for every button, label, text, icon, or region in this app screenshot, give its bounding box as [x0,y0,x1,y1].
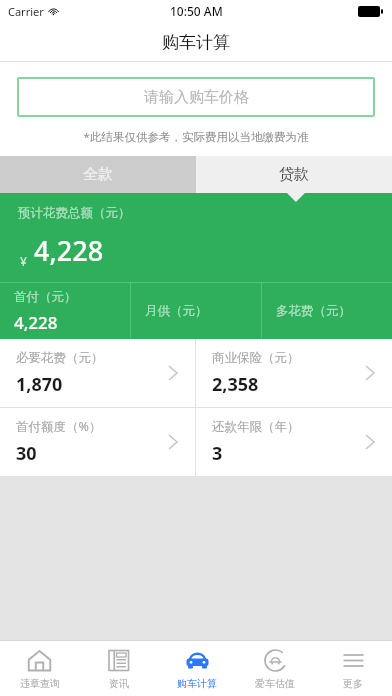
staticText: 3 [212,441,223,466]
staticText: 首付额度（%） [16,418,102,435]
staticText: 还款年限（年） [212,419,300,435]
staticText: ¥ [20,253,27,269]
staticText: 全款 [83,165,113,184]
staticText: 购车计算 [162,32,230,53]
button[interactable]: 全款 [0,156,196,193]
staticText: 预计花费总额（元） [18,205,131,221]
staticText: 必要花费（元） [16,350,104,366]
button[interactable]: 更多 [314,641,392,696]
button[interactable]: 还款年限（年） [196,408,392,476]
staticText: 贷款 [279,165,309,184]
staticText: Carrier [8,4,44,19]
staticText: 4,228 [34,232,104,269]
button[interactable]: 必要花费（元） [0,339,195,407]
button[interactable]: 爱车估值 [236,641,314,696]
staticText: 违章查询 [20,677,60,690]
button[interactable]: 商业保险（元） [196,339,392,407]
button[interactable]: 购车计算 [158,641,236,696]
staticText: 2,358 [212,372,259,397]
staticText: 资讯 [109,677,129,690]
staticText: 4,228 [14,311,58,334]
staticText: 爱车估值 [255,677,295,690]
staticText: 首付（元） [14,289,77,305]
staticText: 商业保险（元） [212,350,300,366]
staticText: 月供（元） [145,303,208,319]
button[interactable]: 违章查询 [0,641,79,696]
button[interactable]: 资讯 [79,641,158,696]
staticText: 10:50 AM [170,3,223,19]
staticText: 购车计算 [177,677,217,690]
button[interactable]: 首付额度（%） [0,408,195,476]
staticText: 30 [16,441,37,466]
button[interactable]: 贷款 [196,156,392,193]
staticText: *此结果仅供参考，实际费用以当地缴费为准 [0,129,392,145]
staticText: 多花费（元） [276,303,351,319]
staticText: 更多 [343,677,363,690]
staticText: 1,870 [16,372,63,397]
button[interactable]: 请输入购车价格 [17,77,375,117]
staticText: 请输入购车价格 [144,88,249,107]
